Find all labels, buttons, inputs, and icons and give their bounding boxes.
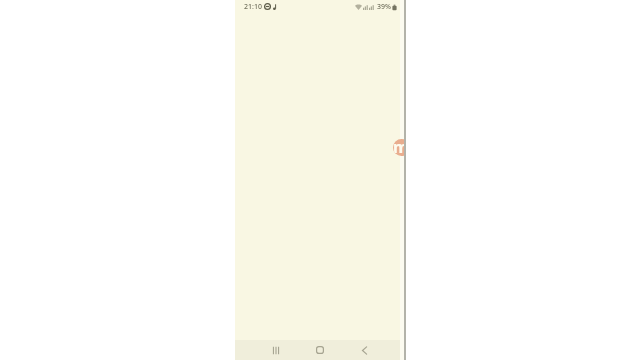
- staticText: m: [393, 139, 404, 153]
- button[interactable]: Home: [304, 340, 335, 360]
- button[interactable]: Back: [349, 340, 379, 360]
- button[interactable]: Recent apps: [261, 340, 291, 360]
- staticText: 21:10: [244, 2, 262, 12]
- staticText: 39%: [377, 2, 391, 12]
- button[interactable]: Messenger chat head: [393, 139, 404, 156]
